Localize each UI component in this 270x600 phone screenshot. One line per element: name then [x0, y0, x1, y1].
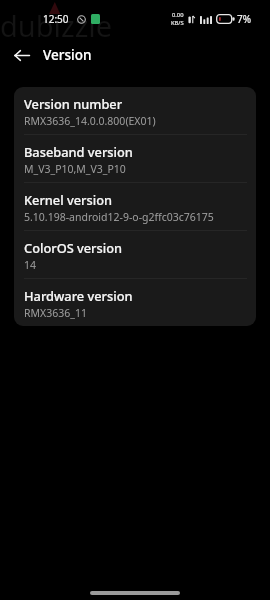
button[interactable]: Kernel version — [14, 183, 256, 230]
staticText: 14 — [24, 258, 37, 272]
staticText: 12:50 — [43, 12, 69, 26]
staticText: Hardware version — [24, 287, 133, 304]
staticText: ColorOS version — [24, 239, 123, 256]
staticText: KB/S — [171, 19, 184, 27]
button[interactable]: Baseband version — [14, 135, 256, 182]
staticText: 7% — [237, 12, 252, 26]
staticText: 0.00 — [172, 11, 184, 19]
staticText: dubizzle — [0, 6, 113, 45]
staticText: RMX3636_11 — [24, 306, 87, 320]
button[interactable]: ColorOS version — [14, 231, 256, 278]
button[interactable]: Hardware version — [14, 279, 256, 326]
button[interactable]: Version number — [14, 87, 256, 134]
button[interactable]: Back — [7, 40, 37, 70]
staticText: RMX3636_14.0.0.800(EX01) — [24, 114, 156, 128]
staticText: M_V3_P10,M_V3_P10 — [24, 162, 126, 176]
staticText: 5.10.198-android12-9-o-g2ffc03c76175 — [24, 210, 214, 224]
staticText: Version — [43, 46, 92, 64]
staticText: Kernel version — [24, 191, 113, 208]
staticText: Version number — [24, 95, 123, 112]
staticText: Baseband version — [24, 143, 133, 160]
